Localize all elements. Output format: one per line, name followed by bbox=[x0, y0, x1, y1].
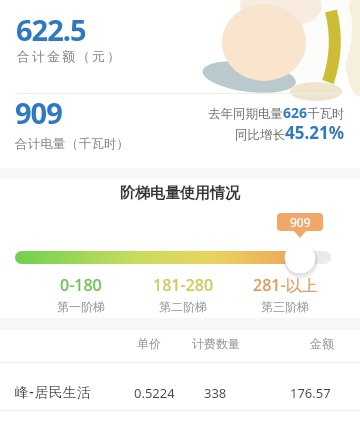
staticText: 909 bbox=[15, 93, 62, 132]
staticText: 合计电量（千瓦时） bbox=[15, 136, 130, 152]
staticText: 第三阶梯 bbox=[261, 299, 309, 314]
staticText: 计费数量 bbox=[192, 336, 240, 351]
staticText: 单价 bbox=[137, 336, 161, 351]
staticText: 338 bbox=[204, 384, 227, 402]
staticText: 181-280 bbox=[153, 274, 214, 296]
staticText: 同比增长45.21% bbox=[235, 121, 345, 144]
button[interactable]: 0-180 bbox=[21, 274, 141, 296]
staticText: 第二阶梯 bbox=[159, 299, 207, 314]
staticText: 金额 bbox=[310, 336, 334, 351]
button[interactable]: 909 bbox=[277, 213, 323, 231]
staticText: 281-以上 bbox=[253, 274, 318, 296]
button[interactable]: 281-以上 bbox=[225, 274, 345, 296]
staticText: 0-180 bbox=[60, 274, 102, 296]
button[interactable]: 181-280 bbox=[123, 274, 243, 296]
staticText: 合计金额（元） bbox=[16, 48, 121, 64]
staticText: 0.5224 bbox=[134, 384, 175, 402]
staticText: 909 bbox=[290, 214, 311, 230]
staticText: 峰-居民生活 bbox=[15, 383, 92, 401]
staticText: 622.5 bbox=[16, 10, 86, 49]
button[interactable]: 峰-居民生活 bbox=[0, 382, 360, 411]
staticText: 176.57 bbox=[290, 384, 331, 402]
staticText: 去年同期电量626千瓦时 bbox=[208, 103, 345, 122]
staticText: 第一阶梯 bbox=[57, 299, 105, 314]
staticText: 阶梯电量使用情况 bbox=[120, 184, 240, 203]
